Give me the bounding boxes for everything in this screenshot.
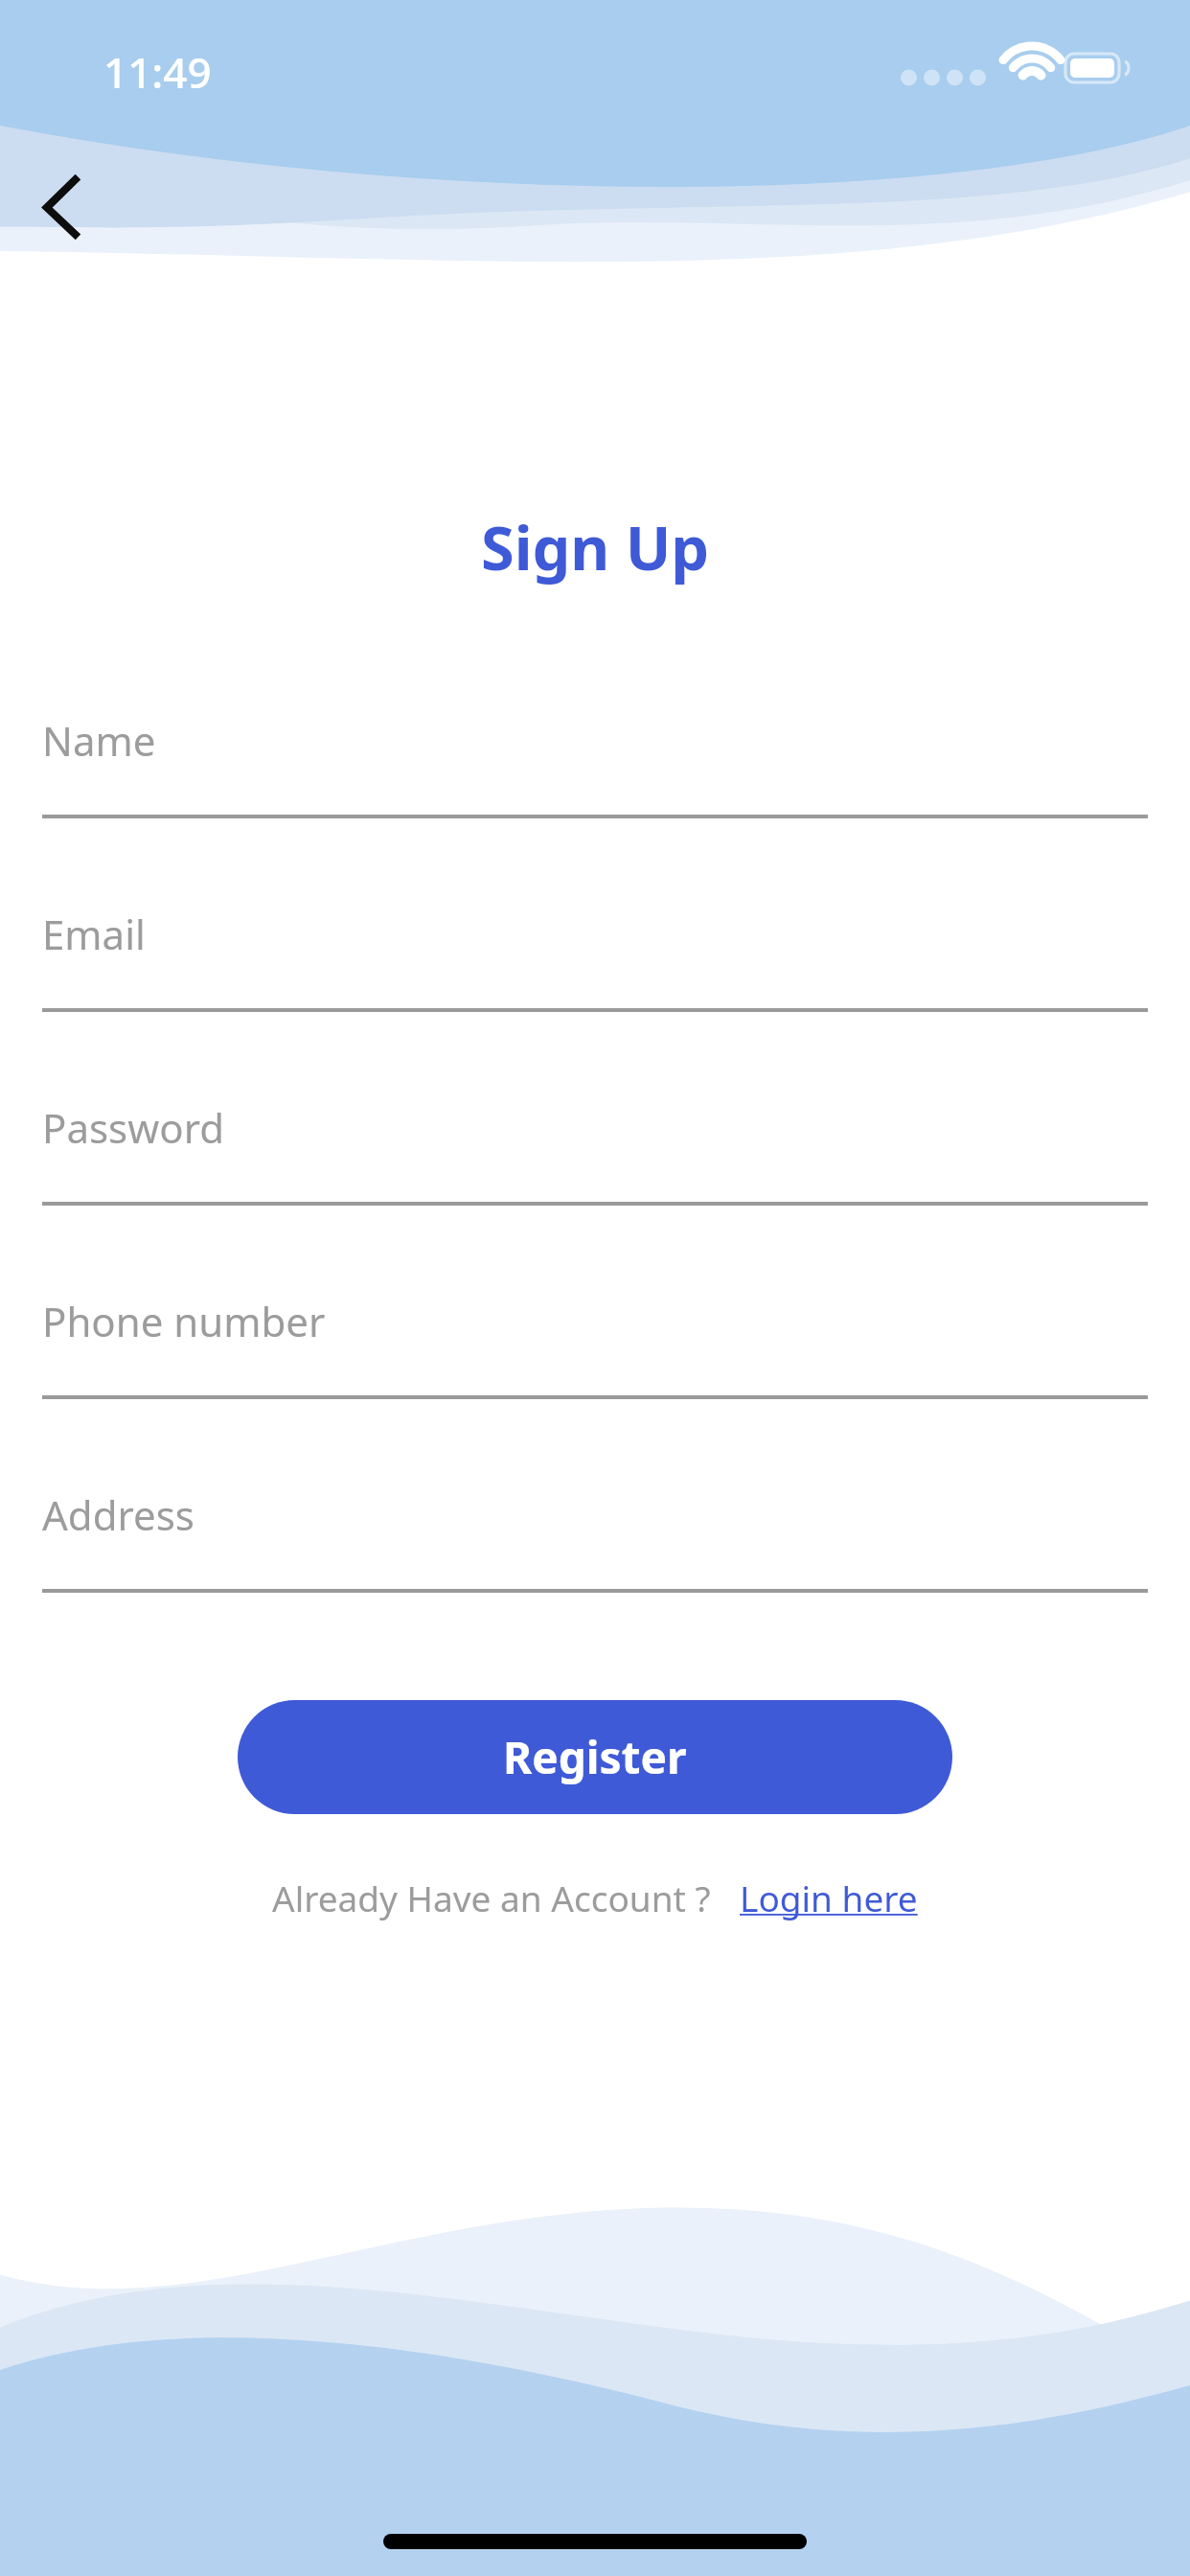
button[interactable]: Register xyxy=(238,1700,952,1814)
button[interactable]: Email xyxy=(42,907,1148,1012)
staticText: Already Have an Account ? xyxy=(272,1874,711,1921)
staticText: 11:49 xyxy=(103,43,212,101)
staticText: Sign Up xyxy=(481,506,710,588)
staticText: Address xyxy=(42,1487,195,1542)
staticText: Register xyxy=(503,1727,687,1787)
staticText: Password xyxy=(42,1100,224,1155)
button[interactable]: Back xyxy=(8,153,115,261)
button[interactable]: Phone number xyxy=(42,1294,1148,1399)
staticText: Phone number xyxy=(42,1294,326,1348)
button[interactable]: Login here xyxy=(740,1874,918,1921)
button[interactable]: Name xyxy=(42,713,1148,818)
staticText: Name xyxy=(42,713,156,768)
button[interactable]: Address xyxy=(42,1487,1148,1593)
staticText: Login here xyxy=(740,1874,918,1921)
button[interactable]: Password xyxy=(42,1100,1148,1206)
staticText: Email xyxy=(42,907,146,961)
